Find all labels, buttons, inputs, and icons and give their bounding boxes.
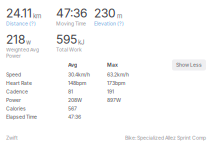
- staticText: 208W: [68, 97, 82, 103]
- staticText: 148bpm: [68, 80, 86, 86]
- staticText: 30.4km/h: [68, 72, 90, 78]
- staticText: 567: [68, 105, 77, 112]
- staticText: 595: [56, 32, 77, 47]
- staticText: w: [26, 38, 31, 46]
- staticText: kJ: [78, 38, 85, 46]
- staticText: Moving Time: [56, 20, 86, 27]
- staticText: Power: [6, 97, 21, 103]
- staticText: 47:36: [68, 114, 81, 120]
- staticText: Max: [107, 62, 118, 68]
- staticText: m: [117, 12, 122, 20]
- staticText: Distance (?): [6, 20, 36, 27]
- staticText: 218: [6, 32, 25, 47]
- staticText: 81: [68, 89, 73, 95]
- staticText: 173bpm: [107, 80, 125, 86]
- staticText: Show Less: [176, 62, 202, 68]
- staticText: 47:36: [56, 6, 87, 20]
- staticText: Total Work: [56, 47, 82, 53]
- staticText: Avg: [68, 62, 77, 68]
- staticText: 897W: [107, 97, 121, 103]
- staticText: Cadence: [6, 89, 28, 95]
- staticText: Speed: [6, 72, 21, 78]
- staticText: Zwift: [6, 135, 18, 141]
- staticText: 63.2km/h: [107, 72, 129, 78]
- staticText: Elevation (?): [94, 20, 124, 27]
- staticText: km: [33, 12, 41, 20]
- staticText: Bike: Specialized Allez Sprint Comp: [125, 135, 206, 141]
- staticText: 230: [94, 6, 116, 20]
- button[interactable]: Show Less: [172, 59, 206, 70]
- staticText: Calories: [6, 105, 26, 112]
- staticText: Heart Rate: [6, 80, 32, 86]
- staticText: 24.11: [6, 6, 32, 20]
- staticText: 191: [107, 89, 114, 95]
- staticText: Elapsed Time: [6, 114, 37, 120]
- staticText: Weighted Avg Power: [6, 47, 39, 59]
